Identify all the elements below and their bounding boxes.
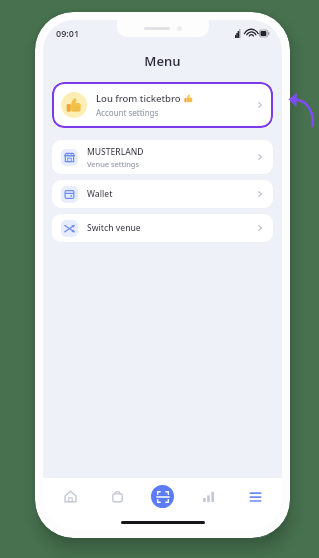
staticText: MUSTERLAND (87, 146, 144, 158)
staticText: Account settings (96, 107, 159, 118)
button[interactable]: Reports (195, 483, 221, 509)
button[interactable]: Menu (242, 483, 268, 509)
button[interactable]: MUSTERLAND (52, 140, 273, 174)
button[interactable]: Scan (151, 485, 174, 508)
staticText: Wallet (87, 188, 113, 200)
staticText: Venue settings (87, 159, 140, 169)
button[interactable]: Wallet (52, 180, 273, 208)
button[interactable]: Home (57, 483, 83, 509)
button[interactable]: Switch venue (52, 214, 273, 242)
staticText: Lou from ticketbro (96, 92, 181, 105)
button[interactable]: Lou from ticketbro (52, 82, 273, 128)
staticText: Switch venue (87, 222, 141, 234)
staticText: 09:01 (56, 27, 80, 39)
staticText: Menu (43, 52, 282, 70)
button[interactable]: Orders (104, 483, 130, 509)
